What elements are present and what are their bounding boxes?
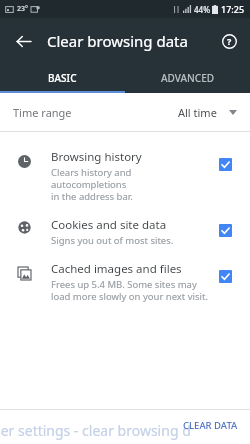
staticText: 23° (17, 4, 28, 14)
staticText: CLEAR DATA (183, 419, 238, 432)
staticText: Cookies and site data (51, 217, 167, 233)
button[interactable]: Checked (216, 155, 234, 173)
staticText: Signs you out of most sites. (51, 234, 174, 247)
staticText: BASIC (48, 71, 77, 85)
staticText: Frees up 5.4 MB. Some sites may load mor… (51, 278, 208, 303)
staticText: 17:25 (221, 3, 245, 15)
button[interactable]: Checked (216, 267, 234, 285)
button[interactable]: Cached images and files (0, 254, 250, 310)
button[interactable]: ADVANCED (125, 63, 250, 93)
staticText: Cached images and files (51, 261, 182, 277)
staticText: ser settings - clear browsing d (0, 421, 191, 440)
button[interactable]: Help (216, 28, 242, 54)
staticText: 44% (194, 4, 210, 15)
staticText: Browsing history (51, 149, 142, 165)
button[interactable]: Checked (216, 221, 234, 239)
button[interactable]: Time range (0, 94, 250, 131)
staticText: Clear browsing data (47, 31, 188, 51)
button[interactable]: BASIC (0, 63, 125, 93)
staticText: ? (227, 35, 232, 47)
button[interactable]: Back (8, 26, 38, 56)
staticText: Time range (13, 105, 72, 120)
button[interactable]: Browsing history (0, 142, 250, 210)
button[interactable]: CLEAR DATA (171, 413, 250, 438)
staticText: All time (178, 105, 217, 120)
staticText: ADVANCED (161, 71, 215, 85)
staticText: Clears history and autocompletions in th… (51, 166, 208, 203)
button[interactable]: Cookies and site data (0, 210, 250, 254)
